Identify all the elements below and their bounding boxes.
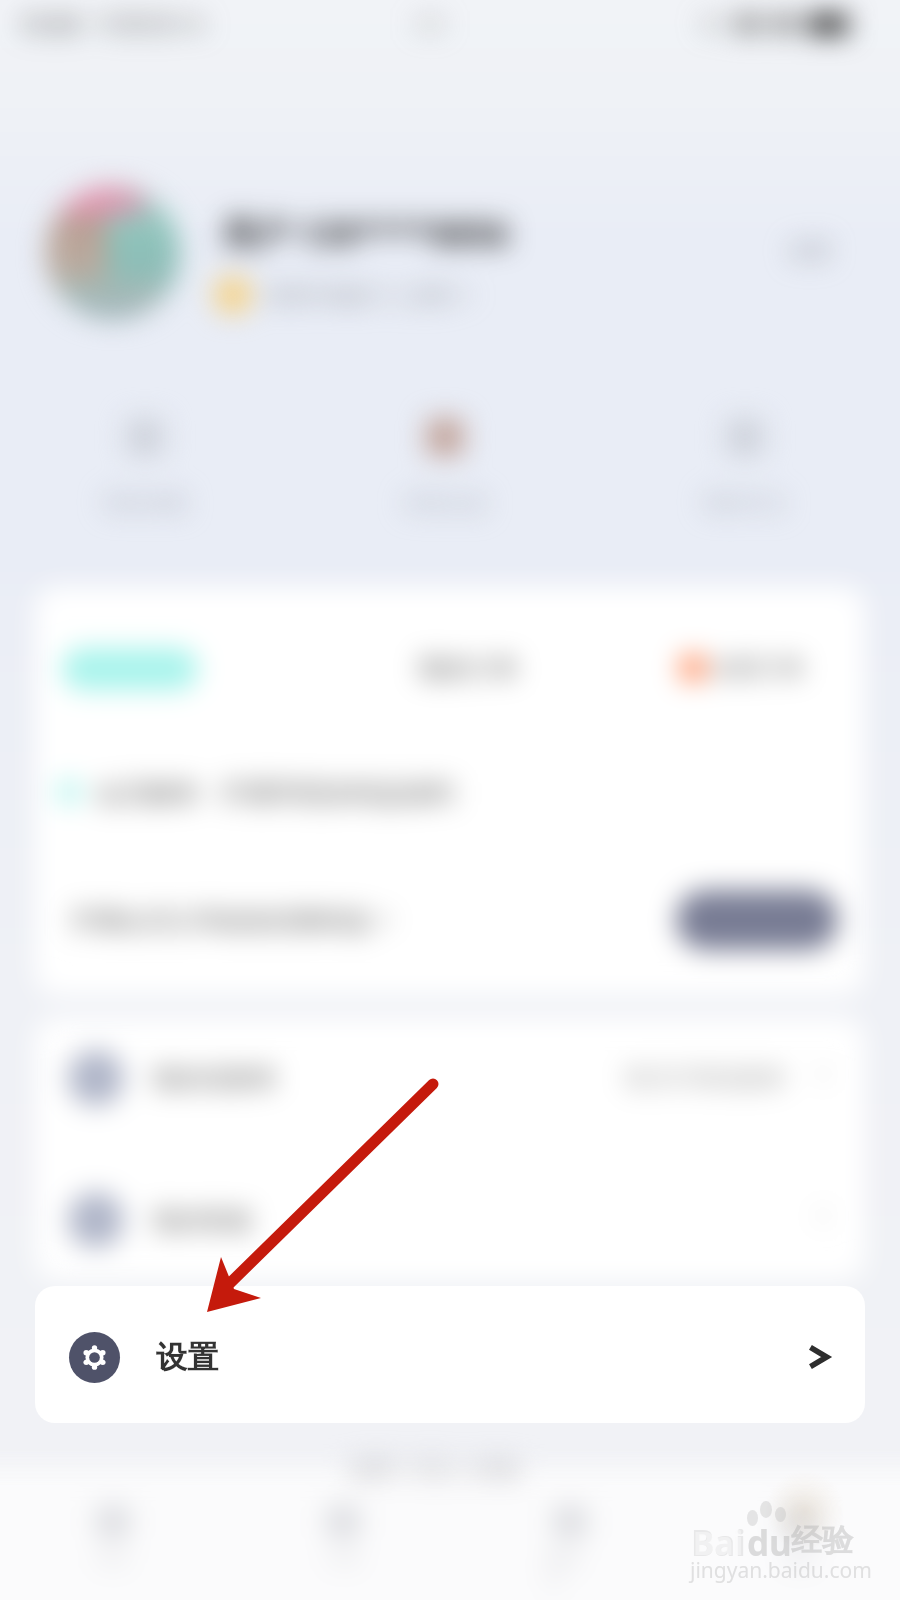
staticText: 我的订单 [418,653,518,684]
other: Open settings [800,1339,836,1375]
staticText: 暂无可用优惠券 [625,1064,786,1093]
staticText: 推荐 关注 好物 [350,1452,519,1485]
button[interactable]: 我的订单 [408,638,528,698]
staticText: 中国联通 4G [94,10,206,37]
button[interactable]: 购物车 [545,1505,595,1593]
staticText: 设置 [156,1338,218,1377]
button[interactable]: 我的客服 [35,1155,865,1285]
button[interactable]: 分类 [318,1505,368,1570]
staticText: 用户 139****0856 [222,210,509,256]
staticText: 会员服务 · 开通享更多权益福利 [96,774,455,810]
staticText: 5G [700,11,725,37]
button[interactable]: Coupons [62,648,198,690]
button[interactable]: 设置 [770,226,850,276]
button[interactable]: 设置 [35,1286,865,1423]
staticText: 我的客服 [152,1205,252,1236]
staticText: Bai [691,1519,746,1567]
button[interactable]: 浏览足迹 [400,418,490,516]
staticText: 我的 [783,1549,817,1570]
staticText: 我的优惠券 [152,1063,277,1094]
button[interactable]: 我的优惠券 [35,1013,865,1143]
button[interactable]: 我的 [775,1505,825,1570]
staticText: 开通会员立享超值优惠权益 > [70,902,391,936]
staticText: Bai [693,1521,744,1565]
button[interactable]: 我的关注 [700,418,790,516]
button[interactable]: 会员服务 · 开通享更多权益福利 [56,762,616,822]
button[interactable]: 首页 [88,1505,138,1570]
staticText: 查看并编辑个人资料 > [266,281,473,310]
button[interactable]: Join membership [676,890,838,950]
button[interactable]: 用户 139****0856 [214,206,628,314]
button[interactable]: 开通会员立享超值优惠权益 > [62,888,402,950]
staticText: 全部订单 [712,654,804,683]
staticText: 10:08 [18,7,80,40]
staticText: jingyan.baidu.com [690,1556,872,1585]
staticText: 经验 [791,1521,853,1560]
button[interactable]: 我的收藏 [100,418,190,516]
staticText: du [747,1519,792,1567]
button[interactable]: Profile photo [46,186,180,320]
button[interactable]: 全部订单 [680,640,804,696]
